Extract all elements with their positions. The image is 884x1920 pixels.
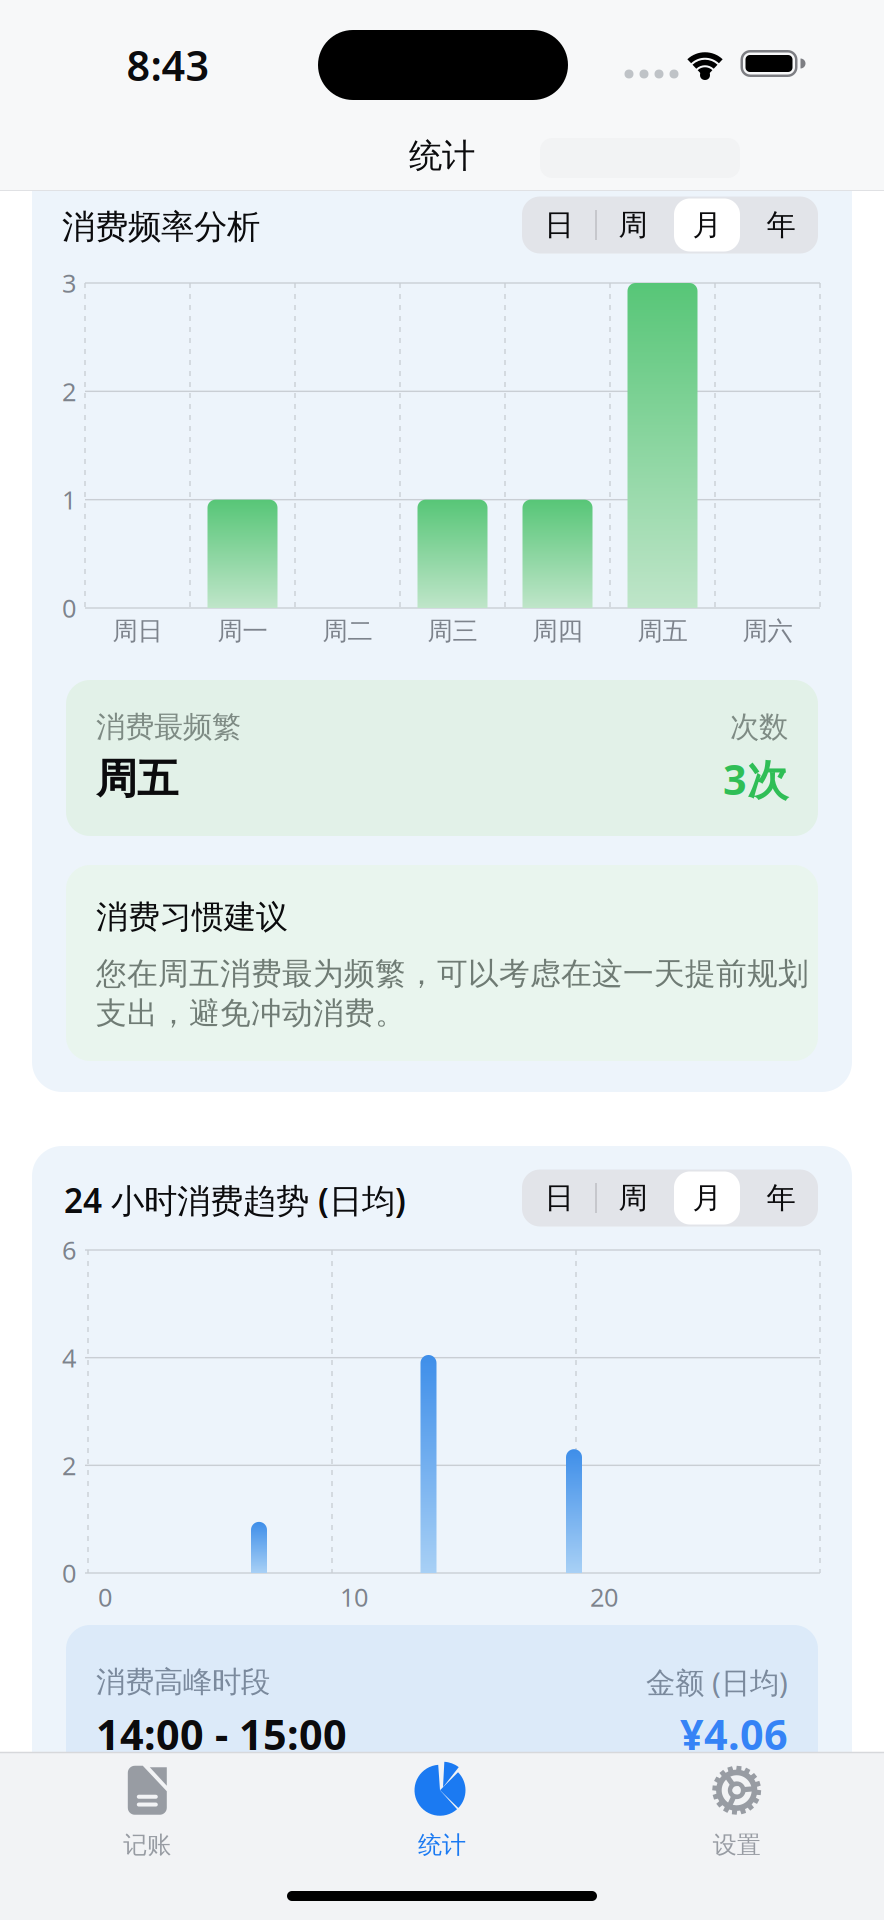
staticText: 周五 [96, 754, 178, 804]
button[interactable]: 年 [744, 1169, 818, 1226]
staticText: 3 [62, 266, 76, 300]
staticText: 年 [766, 207, 795, 243]
staticText: 月 [692, 1180, 721, 1216]
button[interactable]: 月 [670, 1169, 744, 1226]
staticText: 月 [692, 207, 721, 243]
staticText: 周一 [217, 615, 267, 646]
button[interactable]: 日 [522, 196, 596, 253]
button[interactable]: 统计 [412, 1762, 472, 1860]
staticText: 14:00 - 15:00 [96, 1707, 347, 1761]
staticText: 记账 [123, 1830, 171, 1860]
staticText: 金额 (日均) [646, 1662, 788, 1701]
button[interactable]: 月 [670, 196, 744, 253]
staticText: 周 [618, 207, 647, 243]
staticText: 年 [766, 1180, 795, 1216]
button[interactable]: 周 [596, 1169, 670, 1226]
staticText: 周五 [637, 615, 687, 646]
staticText: 20 [590, 1580, 618, 1614]
staticText: 3次 [723, 752, 788, 806]
staticText: 0 [62, 591, 76, 625]
button[interactable]: 周 [596, 196, 670, 253]
staticText: 0 [62, 1556, 76, 1590]
staticText: 消费最频繁 [96, 709, 241, 745]
staticText: 次数 [730, 709, 788, 745]
staticText: 日 [544, 207, 573, 243]
staticText: 8:43 [126, 38, 209, 92]
button[interactable]: 设置 [707, 1762, 767, 1860]
staticText: 周六 [742, 615, 792, 646]
staticText: 设置 [713, 1830, 761, 1860]
staticText: 1 [62, 483, 76, 516]
staticText: 周四 [532, 615, 582, 646]
staticText: 4 [62, 1341, 76, 1374]
staticText: 统计 [418, 1830, 466, 1860]
button[interactable]: 日 [522, 1169, 596, 1226]
staticText: 10 [340, 1580, 368, 1614]
staticText: 消费习惯建议 [96, 897, 288, 937]
staticText: 6 [62, 1233, 76, 1267]
staticText: 统计 [409, 135, 475, 176]
staticText: 消费高峰时段 [96, 1664, 270, 1700]
staticText: 2 [62, 1448, 76, 1482]
staticText: 周三 [427, 615, 477, 646]
button[interactable]: 记账 [117, 1762, 177, 1860]
staticText: 周 [618, 1180, 647, 1216]
staticText: 2 [62, 374, 76, 408]
staticText: 消费频率分析 [62, 206, 260, 247]
staticText: ¥4.06 [680, 1707, 788, 1761]
staticText: 周日 [112, 615, 162, 646]
staticText: 您在周五消费最为频繁，可以考虑在这一天提前规划 支出，避免冲动消费。 [96, 955, 809, 1032]
staticText: 24 小时消费趋势 (日均) [64, 1178, 406, 1222]
staticText: 日 [544, 1180, 573, 1216]
staticText: 周二 [322, 615, 372, 646]
staticText: 0 [98, 1580, 112, 1614]
button[interactable]: 年 [744, 196, 818, 253]
